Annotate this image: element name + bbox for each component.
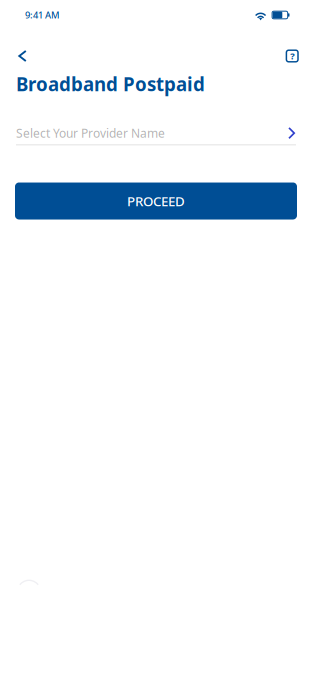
- button[interactable]: Select Your Provider Name: [0, 123, 312, 145]
- staticText: 9:41 AM: [25, 9, 60, 21]
- staticText: Broadband Postpaid: [16, 72, 205, 96]
- button[interactable]: Back: [18, 41, 54, 71]
- staticText: Select Your Provider Name: [16, 125, 165, 141]
- button[interactable]: PROCEED: [15, 182, 297, 219]
- staticText: ?: [290, 50, 294, 62]
- button[interactable]: Help: [268, 41, 298, 71]
- staticText: PROCEED: [127, 192, 185, 210]
